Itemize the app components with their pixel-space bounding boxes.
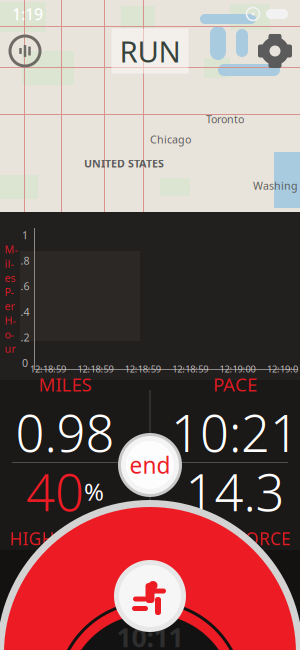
staticText: MILES xyxy=(38,372,91,397)
staticText: Washing xyxy=(253,178,298,193)
staticText: .6 xyxy=(20,279,29,293)
staticText: AVG G-FORCE xyxy=(179,527,291,550)
staticText: .2 xyxy=(20,330,29,344)
staticText: 12:19:00 xyxy=(220,363,256,375)
staticText: RUN xyxy=(119,31,180,70)
staticText: Chicago xyxy=(150,132,191,146)
button[interactable]: end xyxy=(115,430,185,500)
staticText: 0.98 xyxy=(15,399,114,466)
button[interactable]: Activity xyxy=(112,558,188,634)
staticText: .8 xyxy=(20,254,29,268)
staticText: 12:18:59 xyxy=(172,363,208,375)
staticText: 12:18:59 xyxy=(125,363,161,375)
staticText: end xyxy=(129,450,170,480)
staticText: PACE xyxy=(213,372,257,397)
staticText: 12:18:59 xyxy=(30,363,66,375)
staticText: 1 xyxy=(22,228,28,242)
staticText: 12:19:0 xyxy=(267,363,298,375)
staticText: HIGH STRESS xyxy=(9,527,120,550)
staticText: 10:11 xyxy=(116,619,183,650)
staticText: 14.3 xyxy=(185,458,284,525)
staticText: .4 xyxy=(20,305,29,319)
staticText: 0 xyxy=(22,356,28,370)
staticText: % xyxy=(84,476,104,507)
staticText: 10:21 xyxy=(171,399,299,466)
staticText: UNITED STATES xyxy=(84,156,164,170)
staticText: 1:19 xyxy=(12,3,43,25)
staticText: 40 xyxy=(26,458,84,525)
button[interactable]: Statistics xyxy=(4,30,46,72)
staticText: 12:18:59 xyxy=(77,363,113,375)
staticText: Toronto xyxy=(206,112,244,126)
staticText: Miles Per Hour xyxy=(4,242,17,356)
button[interactable]: Settings xyxy=(254,30,296,72)
